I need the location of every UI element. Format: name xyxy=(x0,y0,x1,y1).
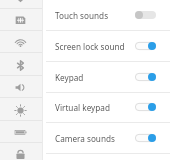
staticText: Camera sounds xyxy=(55,133,115,144)
button[interactable]: Wi-Fi xyxy=(0,31,43,53)
staticText: Virtual keypad xyxy=(55,102,110,113)
button[interactable]: SIM card xyxy=(0,9,43,31)
button[interactable]: Touch sounds xyxy=(43,0,170,31)
button[interactable]: Keypad xyxy=(43,62,170,93)
staticText: Keypad xyxy=(55,72,84,83)
button[interactable]: Lock screen xyxy=(0,143,43,160)
button[interactable]: Virtual keypad xyxy=(43,92,170,123)
button[interactable]: Sound xyxy=(0,76,43,98)
button[interactable]: Battery xyxy=(0,121,43,143)
button[interactable]: Camera sounds xyxy=(43,123,170,154)
staticText: Screen lock sound xyxy=(55,41,125,52)
staticText: Touch sounds xyxy=(55,10,109,21)
button[interactable]: Sync xyxy=(0,0,43,9)
button[interactable]: Screen lock sound xyxy=(43,31,170,62)
button[interactable]: Brightness xyxy=(0,99,43,121)
button[interactable]: Bluetooth xyxy=(0,54,43,76)
